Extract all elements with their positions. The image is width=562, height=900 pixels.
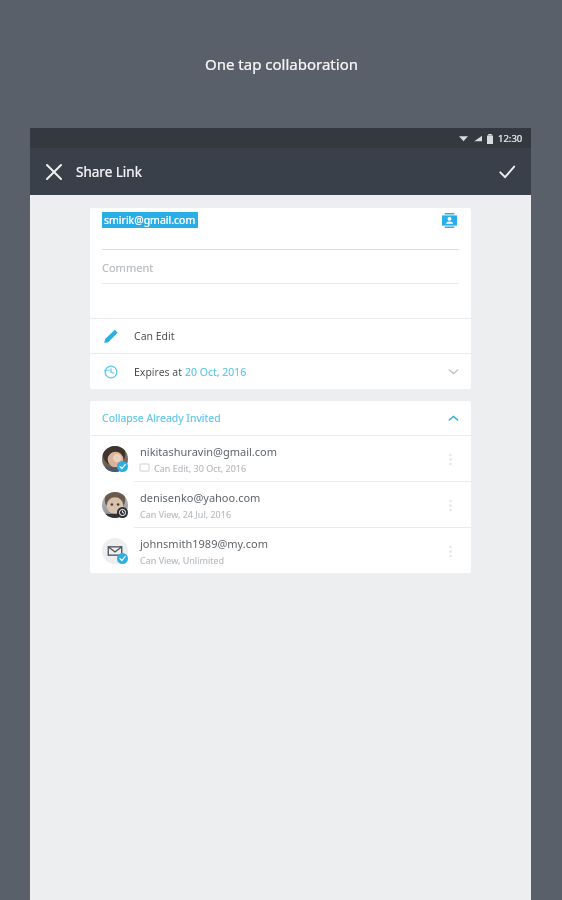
button[interactable]: johnsmith1989@my.com bbox=[90, 528, 471, 573]
button[interactable]: Collapse Already Invited bbox=[90, 401, 471, 435]
button[interactable]: More options bbox=[437, 492, 463, 518]
button[interactable]: Confirm bbox=[489, 154, 525, 190]
button[interactable]: denisenko@yahoo.com bbox=[90, 482, 471, 527]
staticText: Can View, 24 Jul, 2016 bbox=[140, 508, 232, 520]
button[interactable]: More options bbox=[437, 446, 463, 472]
staticText: Share Link bbox=[76, 163, 142, 181]
staticText: Can Edit, 30 Oct, 2016 bbox=[154, 462, 247, 474]
staticText: Can View, Unlimited bbox=[140, 554, 225, 566]
staticText: 12:30 bbox=[498, 132, 523, 145]
staticText: One tap collaboration bbox=[205, 54, 358, 74]
staticText: Expires at bbox=[134, 365, 185, 379]
button[interactable]: nikitashuravin@gmail.com bbox=[90, 436, 471, 481]
staticText: Comment bbox=[102, 260, 154, 275]
staticText: nikitashuravin@gmail.com bbox=[140, 444, 278, 459]
staticText: denisenko@yahoo.com bbox=[140, 490, 261, 505]
button[interactable]: More options bbox=[437, 538, 463, 564]
button[interactable]: Expires at bbox=[90, 354, 471, 389]
staticText: smirik@gmail.com bbox=[104, 213, 196, 227]
staticText: Collapse Already Invited bbox=[102, 411, 221, 425]
staticText: 20 Oct, 2016 bbox=[185, 365, 247, 379]
button[interactable]: Can Edit bbox=[90, 319, 471, 353]
staticText: Can Edit bbox=[134, 329, 175, 343]
button[interactable]: Close bbox=[36, 154, 72, 190]
button[interactable]: Pick contact bbox=[437, 208, 461, 232]
staticText: johnsmith1989@my.com bbox=[140, 536, 268, 551]
